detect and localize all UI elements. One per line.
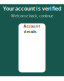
staticText: Your account is verified bbox=[3, 5, 61, 12]
staticText: Account details bbox=[23, 23, 40, 34]
staticText: Welcome back, continue bbox=[11, 13, 53, 18]
